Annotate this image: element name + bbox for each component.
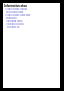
staticText: • Browse topic bbox=[6, 19, 23, 22]
staticText: Start here now bbox=[6, 10, 24, 13]
staticText: • Recent chang bbox=[6, 22, 24, 25]
staticText: • Main Page: how edit bbox=[5, 13, 31, 16]
staticText: • Main Page: about bbox=[5, 7, 28, 10]
button[interactable]: Information abou bbox=[4, 4, 27, 8]
button[interactable]: • Browse topic bbox=[6, 18, 23, 21]
staticText: • Recent chang bbox=[6, 22, 24, 25]
staticText: • Main Page: about bbox=[5, 7, 28, 10]
button[interactable]: • Recent chang bbox=[6, 21, 24, 24]
button[interactable]: • Main Page: how edit bbox=[5, 12, 31, 15]
button[interactable]: Contact us bbox=[7, 24, 20, 27]
staticText: Featured bbox=[6, 16, 17, 19]
staticText: Contact us bbox=[7, 25, 20, 28]
staticText: Information abou bbox=[4, 4, 27, 8]
button[interactable]: Start here now bbox=[6, 9, 24, 12]
staticText: Start here now bbox=[6, 10, 24, 13]
button[interactable]: Featured bbox=[6, 15, 17, 18]
button[interactable]: • Main Page: about bbox=[5, 6, 28, 9]
staticText: Contact us bbox=[7, 25, 20, 28]
staticText: Information abou bbox=[4, 4, 27, 8]
staticText: Featured bbox=[6, 16, 17, 19]
staticText: • Main Page: how edit bbox=[5, 13, 31, 16]
staticText: • Browse topic bbox=[6, 19, 23, 22]
